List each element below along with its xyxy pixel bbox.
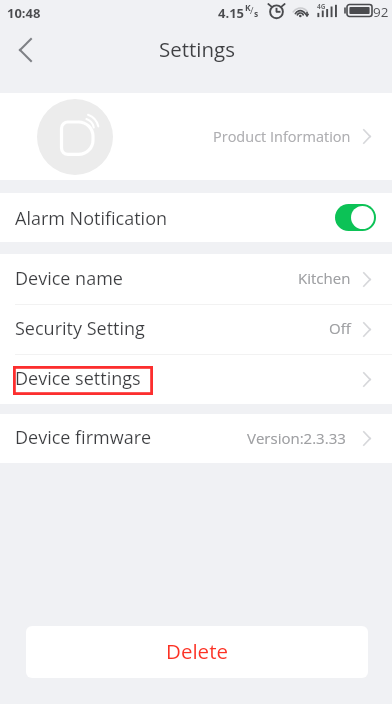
staticText: Device settings [15, 366, 141, 391]
button[interactable]: Device name [0, 254, 392, 304]
staticText: Off [329, 318, 351, 338]
staticText: Delete [166, 637, 228, 665]
staticText: Kitchen [298, 268, 351, 288]
staticText: Version:2.3.33 [247, 428, 346, 448]
staticText: s [254, 8, 259, 20]
staticText: Security Setting [15, 316, 145, 341]
staticText: Settings [159, 35, 236, 63]
staticText: Product Information [213, 127, 351, 147]
staticText: Device firmware [15, 425, 152, 450]
button[interactable]: Device firmware [0, 414, 392, 463]
staticText: Device name [15, 266, 123, 291]
button[interactable]: Alarm Notification toggle, on [335, 204, 376, 231]
staticText: K [245, 2, 251, 14]
button[interactable]: Delete [26, 626, 368, 678]
staticText: 4.15 [218, 4, 245, 22]
staticText: 4G [317, 2, 326, 11]
button[interactable]: Device settings [0, 354, 392, 404]
button[interactable]: Security Setting [0, 304, 392, 354]
staticText: 92 [373, 3, 389, 21]
staticText: Alarm Notification [15, 206, 168, 231]
staticText: / [250, 4, 254, 17]
staticText: 10:48 [7, 4, 41, 22]
button[interactable]: Back [0, 26, 46, 76]
button[interactable]: Product Information [0, 93, 392, 180]
